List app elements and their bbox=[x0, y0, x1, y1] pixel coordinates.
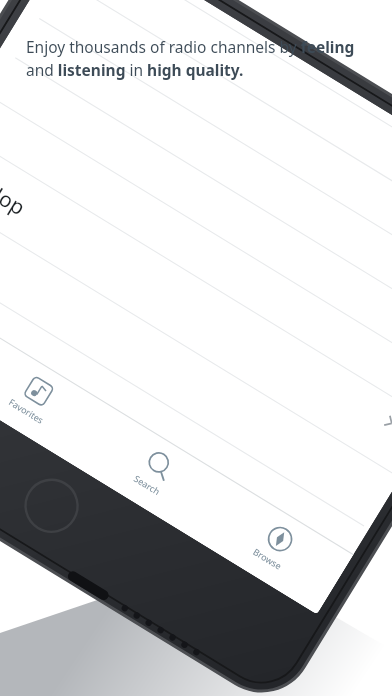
button[interactable]: Browse bbox=[237, 490, 277, 518]
button[interactable]: Search bbox=[185, 525, 225, 553]
button[interactable]: Categories bbox=[85, 595, 125, 623]
staticText: Enjoy thousands of radio channels by fee… bbox=[26, 36, 362, 81]
